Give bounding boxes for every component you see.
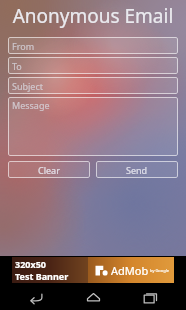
button[interactable]: Recent apps bbox=[129, 284, 171, 310]
button[interactable]: From bbox=[8, 37, 178, 54]
staticText: by Google bbox=[150, 268, 169, 273]
staticText: 320x50 bbox=[15, 258, 46, 270]
button[interactable]: Clear bbox=[8, 161, 90, 178]
button[interactable]: To bbox=[8, 57, 178, 74]
staticText: Anonymous Email bbox=[8, 3, 178, 29]
button[interactable]: Message bbox=[8, 97, 178, 156]
button[interactable]: Home bbox=[72, 284, 114, 310]
staticText: AdMob bbox=[111, 263, 149, 278]
button[interactable]: Back bbox=[15, 284, 57, 310]
staticText: Message bbox=[12, 99, 50, 111]
staticText: Test Banner bbox=[15, 270, 69, 282]
button[interactable]: Advertisement bbox=[12, 257, 174, 283]
staticText: Send bbox=[126, 164, 148, 176]
staticText: Subject bbox=[12, 80, 44, 92]
staticText: Clear bbox=[38, 164, 60, 176]
button[interactable]: Send bbox=[96, 161, 178, 178]
button[interactable]: Subject bbox=[8, 77, 178, 94]
staticText: To bbox=[12, 60, 22, 72]
staticText: From bbox=[12, 40, 35, 52]
